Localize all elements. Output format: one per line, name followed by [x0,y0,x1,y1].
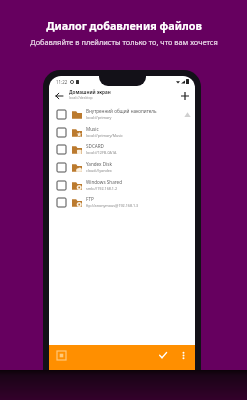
button[interactable]: Music [49,123,195,141]
button[interactable]: SDCARD [49,140,195,158]
staticText: cloud://yandex [86,168,112,173]
button[interactable]: Confirm [155,347,171,363]
staticText: SDCARD [86,143,104,149]
button[interactable]: Yandex Disk [49,158,195,176]
button[interactable]: Внутренний общий накопитель [49,105,195,123]
staticText: local://primary [86,115,112,120]
button[interactable]: Back [51,88,66,103]
staticText: Диалог добавления файлов [46,18,202,33]
staticText: Windows Shared [86,179,122,185]
staticText: local://desktop [69,95,93,100]
button[interactable]: More options [175,347,191,363]
staticText: ftp://anonymous@192.168.1.3 [86,203,139,208]
staticText: smb://192.168.1.2 [86,186,118,191]
button[interactable]: Windows Shared [49,176,195,194]
staticText: Добавляйте в плейлисты только то, что ва… [30,37,218,47]
button[interactable]: FTP [49,193,195,211]
staticText: Внутренний общий накопитель [86,108,157,114]
button[interactable]: Select all [53,347,69,363]
button[interactable]: Add [177,88,192,103]
staticText: FTP [86,196,94,202]
staticText: local://12FB-0A1A [86,150,117,155]
staticText: Music [86,126,99,132]
staticText: Домашний экран [69,89,111,95]
staticText: local://primary/Music [86,133,123,138]
staticText: Yandex Disk [86,161,112,167]
staticText: 11:22 [56,79,68,85]
